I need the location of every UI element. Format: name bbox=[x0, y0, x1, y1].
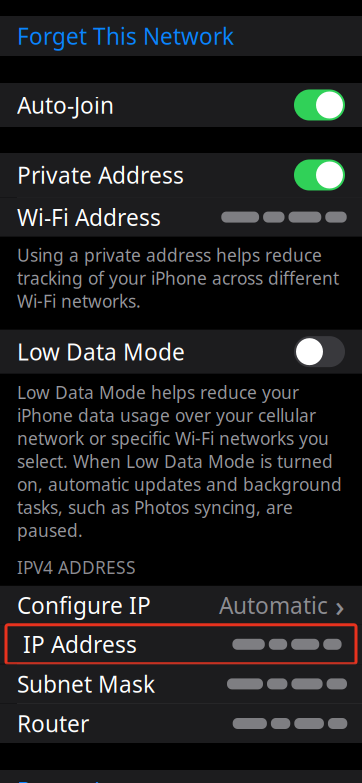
button[interactable]: Renew Lease bbox=[0, 770, 362, 783]
staticText: Renew Lease bbox=[17, 775, 156, 783]
staticText: Configure IP bbox=[17, 590, 151, 620]
staticText: Using a private address helps reduce tra… bbox=[17, 244, 339, 313]
staticText: Wi-Fi Address bbox=[17, 202, 161, 232]
button[interactable]: Low Data Mode bbox=[0, 330, 362, 374]
button[interactable]: Private Address bbox=[0, 153, 362, 197]
staticText: Auto-Join bbox=[17, 90, 114, 120]
staticText: Private Address bbox=[17, 160, 184, 190]
staticText: Low Data Mode helps reduce your iPhone d… bbox=[17, 381, 342, 542]
staticText: › bbox=[335, 586, 345, 625]
staticText: Low Data Mode bbox=[17, 337, 185, 367]
staticText: Subnet Mask bbox=[17, 669, 155, 699]
staticText: Router bbox=[17, 708, 89, 738]
staticText: Forget This Network bbox=[17, 21, 234, 51]
button[interactable]: Configure IP bbox=[0, 586, 362, 625]
staticText: Automatic bbox=[219, 590, 328, 620]
button[interactable]: Forget This Network bbox=[0, 16, 362, 56]
staticText: IP Address bbox=[23, 629, 137, 659]
staticText: IPV4 ADDRESS bbox=[17, 556, 136, 579]
button[interactable]: Auto-Join bbox=[0, 83, 362, 127]
